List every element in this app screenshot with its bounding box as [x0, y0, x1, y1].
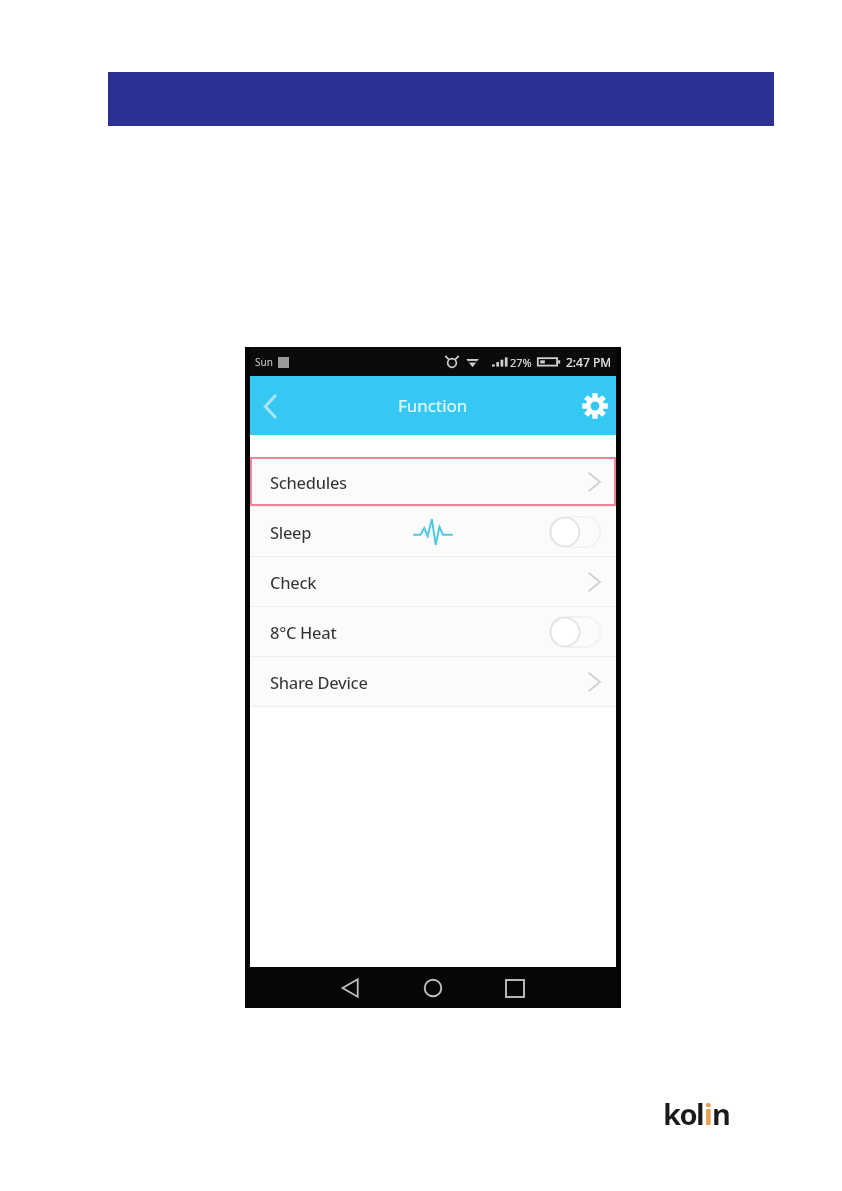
button[interactable]: Sleep	[250, 507, 616, 556]
staticText: Check	[270, 571, 317, 593]
button[interactable]: Check	[250, 557, 616, 606]
button[interactable]: Settings	[575, 386, 615, 426]
staticText: Share Device	[270, 671, 368, 693]
button[interactable]: Share Device	[250, 657, 616, 706]
button[interactable]: Back	[333, 971, 367, 1005]
staticText: n	[712, 1094, 730, 1133]
staticText: 8°C Heat	[270, 621, 337, 643]
staticText: Sun	[255, 355, 273, 369]
staticText: 27%	[510, 355, 532, 370]
button[interactable]: 8°C Heat switch, off	[549, 616, 601, 648]
button[interactable]: 8°C Heat	[250, 607, 616, 656]
staticText: Schedules	[270, 471, 347, 493]
button[interactable]: Recent apps	[498, 971, 532, 1005]
staticText: 2:47 PM	[566, 354, 612, 370]
button[interactable]: Home	[416, 971, 450, 1005]
staticText: Sleep	[270, 521, 312, 543]
staticText: Function	[398, 394, 468, 417]
button[interactable]: Back	[251, 387, 289, 425]
staticText: kol	[663, 1094, 704, 1133]
staticText: i	[704, 1094, 712, 1133]
button[interactable]: Schedules	[250, 457, 616, 506]
button[interactable]: Sleep switch, off	[549, 516, 601, 548]
